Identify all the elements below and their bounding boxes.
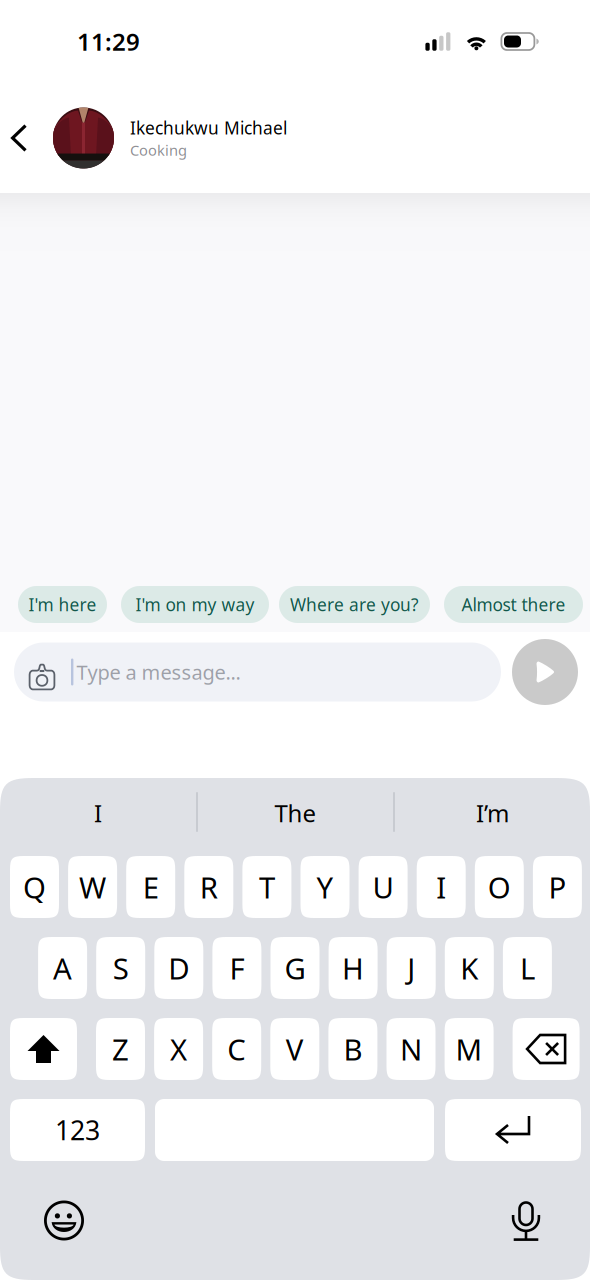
staticText: 123 [55, 1112, 100, 1148]
staticText: G [284, 948, 305, 987]
button[interactable]: F [212, 937, 261, 999]
staticText: H [342, 948, 364, 987]
staticText: K [460, 948, 478, 987]
button[interactable]: T [242, 856, 291, 918]
staticText: A [53, 948, 72, 987]
staticText: B [343, 1029, 362, 1068]
button[interactable]: K [445, 937, 494, 999]
staticText: I'm on my way [135, 593, 254, 616]
button[interactable]: Emoji [36, 1192, 92, 1248]
staticText: Z [112, 1029, 129, 1068]
button[interactable]: Z [96, 1018, 145, 1080]
staticText: Almost there [461, 593, 565, 616]
staticText: R [200, 867, 218, 906]
staticText: I [94, 797, 102, 829]
button[interactable]: B [328, 1018, 377, 1080]
staticText: I'm here [28, 593, 96, 616]
staticText: N [400, 1029, 422, 1068]
staticText: L [520, 948, 535, 987]
button[interactable]: Send [512, 639, 578, 705]
button[interactable]: Shift [10, 1018, 77, 1080]
staticText: T [259, 867, 275, 906]
staticText: Q [23, 867, 46, 906]
button[interactable]: V [270, 1018, 319, 1080]
button[interactable]: Back [11, 98, 53, 178]
staticText: Cooking [130, 140, 187, 160]
button[interactable]: X [154, 1018, 203, 1080]
staticText: X [170, 1029, 187, 1068]
button[interactable]: S [96, 937, 145, 999]
staticText: P [548, 867, 566, 906]
staticText: I’m [476, 797, 509, 829]
button[interactable]: N [386, 1018, 435, 1080]
button[interactable]: The [198, 778, 393, 856]
button[interactable]: I [0, 778, 196, 856]
button[interactable]: I'm here [18, 586, 107, 623]
staticText: Where are you? [290, 593, 419, 616]
button[interactable]: Delete [513, 1018, 580, 1080]
button[interactable]: I’m [395, 778, 590, 856]
button[interactable]: W [68, 856, 117, 918]
staticText: O [488, 867, 511, 906]
button[interactable]: L [503, 937, 552, 999]
staticText: D [168, 948, 189, 987]
button[interactable]: E [126, 856, 175, 918]
staticText: U [373, 867, 394, 906]
button[interactable]: Almost there [444, 586, 583, 623]
staticText: W [79, 867, 106, 906]
staticText: S [113, 948, 129, 987]
staticText: J [407, 948, 415, 987]
button[interactable]: Y [300, 856, 349, 918]
button[interactable]: U [359, 856, 408, 918]
button[interactable]: R [184, 856, 233, 918]
button[interactable]: Where are you? [279, 586, 430, 623]
button[interactable]: M [445, 1018, 494, 1080]
staticText: Y [316, 867, 333, 906]
button[interactable]: O [475, 856, 524, 918]
button[interactable]: Return [445, 1099, 581, 1161]
button[interactable]: I [417, 856, 466, 918]
staticText: The [274, 797, 316, 829]
button[interactable]: C [212, 1018, 261, 1080]
button[interactable]: Q [10, 856, 59, 918]
button[interactable]: P [533, 856, 582, 918]
staticText: M [456, 1029, 483, 1068]
staticText: E [143, 867, 159, 906]
staticText: Type a message... [76, 659, 240, 685]
staticText: Ikechukwu Michael [130, 116, 287, 139]
button[interactable]: D [154, 937, 203, 999]
button[interactable]: A [38, 937, 87, 999]
button[interactable]: Dictate [498, 1192, 554, 1248]
button[interactable]: I'm on my way [121, 586, 269, 623]
button[interactable]: 123 [10, 1099, 145, 1161]
staticText: F [229, 948, 244, 987]
button[interactable]: Ikechukwu Michael [53, 98, 321, 178]
staticText: C [227, 1029, 246, 1068]
button[interactable]: H [329, 937, 378, 999]
button[interactable]: J [387, 937, 436, 999]
staticText: 11:29 [77, 26, 140, 57]
staticText: I [436, 867, 446, 906]
staticText: V [286, 1029, 304, 1068]
button[interactable]: G [270, 937, 319, 999]
